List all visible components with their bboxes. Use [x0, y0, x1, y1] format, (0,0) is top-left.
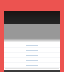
- button[interactable]: [4, 58, 60, 63]
- button[interactable]: [4, 53, 60, 58]
- button[interactable]: [4, 43, 60, 48]
- button[interactable]: [4, 48, 60, 53]
- button[interactable]: [4, 63, 60, 68]
